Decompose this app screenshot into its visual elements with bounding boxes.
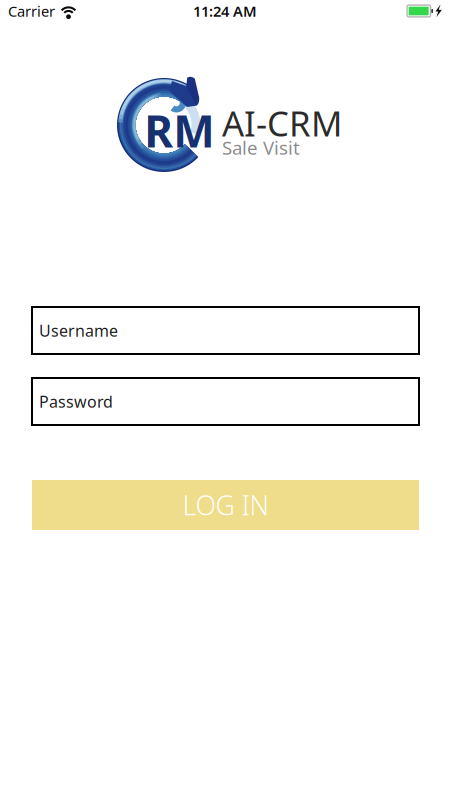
- staticText: Password: [39, 391, 113, 412]
- staticText: Sale Visit: [222, 135, 300, 160]
- staticText: RM: [144, 101, 214, 160]
- button[interactable]: LOG IN: [32, 480, 419, 530]
- button[interactable]: Username: [32, 307, 419, 354]
- button[interactable]: Password: [32, 378, 419, 425]
- staticText: 11:24 AM: [193, 1, 257, 21]
- staticText: Carrier: [8, 1, 55, 21]
- staticText: LOG IN: [182, 487, 268, 523]
- staticText: AI-CRM: [222, 100, 342, 146]
- staticText: Username: [39, 320, 118, 341]
